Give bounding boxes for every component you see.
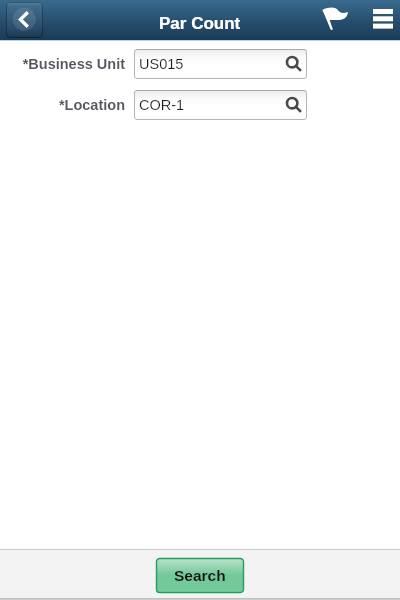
button[interactable]: Back bbox=[6, 2, 43, 38]
button[interactable]: US015 bbox=[134, 49, 307, 79]
button[interactable]: COR-1 bbox=[134, 90, 307, 120]
staticText: Search bbox=[174, 567, 226, 584]
staticText: *Location bbox=[58, 97, 125, 113]
button[interactable]: Flag bbox=[319, 1, 351, 35]
staticText: Par Count bbox=[159, 14, 241, 33]
button[interactable]: Menu bbox=[367, 2, 398, 36]
button[interactable]: Search bbox=[156, 558, 244, 593]
staticText: US015 bbox=[139, 56, 184, 72]
staticText: *Business Unit bbox=[22, 56, 125, 72]
staticText: COR-1 bbox=[139, 97, 185, 113]
